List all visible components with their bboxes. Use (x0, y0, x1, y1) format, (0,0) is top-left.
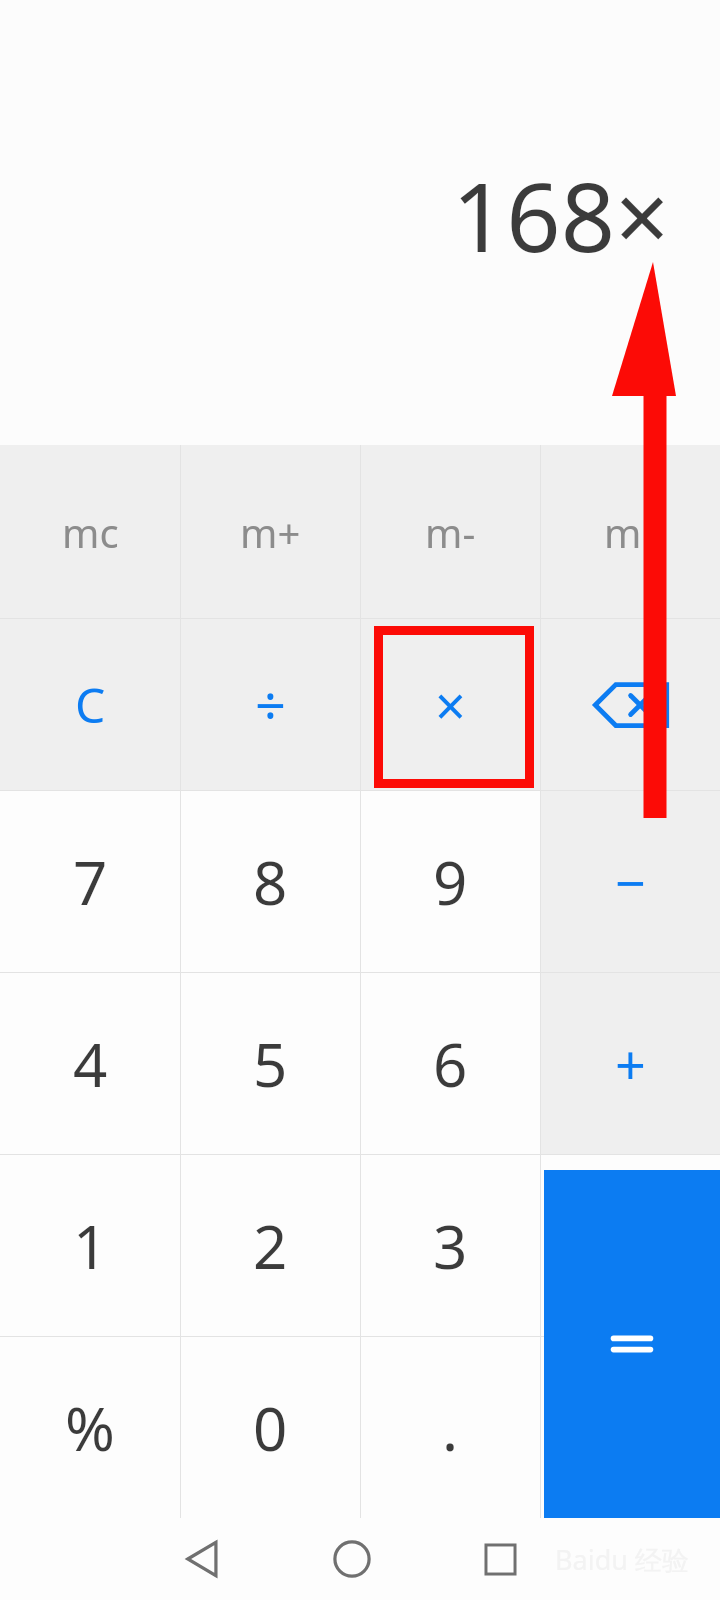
staticText: − (615, 845, 646, 919)
button[interactable]: m+ (181, 445, 360, 618)
button[interactable]: ÷ (181, 619, 360, 790)
button[interactable]: 4 (0, 973, 180, 1154)
button[interactable]: + (541, 973, 720, 1154)
staticText: C (75, 672, 106, 737)
staticText: m+ (240, 505, 301, 559)
staticText: 168× (452, 150, 670, 279)
staticText: % (65, 1387, 115, 1469)
staticText: 6 (433, 1023, 468, 1105)
staticText: 7 (73, 841, 108, 923)
button[interactable]: C (0, 619, 180, 790)
staticText: m- (425, 505, 476, 559)
button[interactable]: 3 (361, 1155, 540, 1336)
button[interactable]: 8 (181, 791, 360, 972)
button[interactable]: 6 (361, 973, 540, 1154)
staticText: 3 (433, 1205, 468, 1287)
staticText: 1 (73, 1205, 108, 1287)
staticText: 4 (73, 1023, 108, 1105)
button[interactable]: Back (175, 1531, 231, 1587)
staticText: × (435, 668, 466, 742)
staticText: 8 (253, 841, 288, 923)
button[interactable]: mr (541, 445, 720, 618)
button[interactable]: − (541, 791, 720, 972)
staticText: Baidu 经验 (555, 1541, 689, 1578)
button[interactable]: Recents (472, 1531, 528, 1587)
button[interactable]: 2 (181, 1155, 360, 1336)
staticText: . (442, 1387, 459, 1469)
button[interactable]: % (0, 1337, 180, 1518)
staticText: 5 (253, 1023, 288, 1105)
staticText: + (615, 1027, 646, 1101)
staticText: ÷ (255, 668, 286, 742)
button[interactable]: × (361, 619, 540, 790)
button[interactable]: Backspace (541, 619, 720, 790)
button[interactable]: 1 (0, 1155, 180, 1336)
button[interactable]: 9 (361, 791, 540, 972)
button[interactable]: . (361, 1337, 540, 1518)
button[interactable]: 0 (181, 1337, 360, 1518)
button[interactable]: mc (0, 445, 180, 618)
staticText: 0 (253, 1387, 288, 1469)
button[interactable]: Equals (544, 1170, 720, 1518)
button[interactable]: 7 (0, 791, 180, 972)
staticText: mc (62, 505, 119, 559)
staticText: mr (604, 505, 658, 559)
button[interactable]: 5 (181, 973, 360, 1154)
button[interactable]: Home (324, 1531, 380, 1587)
staticText: 2 (253, 1205, 288, 1287)
staticText: 9 (433, 841, 468, 923)
button[interactable]: m- (361, 445, 540, 618)
